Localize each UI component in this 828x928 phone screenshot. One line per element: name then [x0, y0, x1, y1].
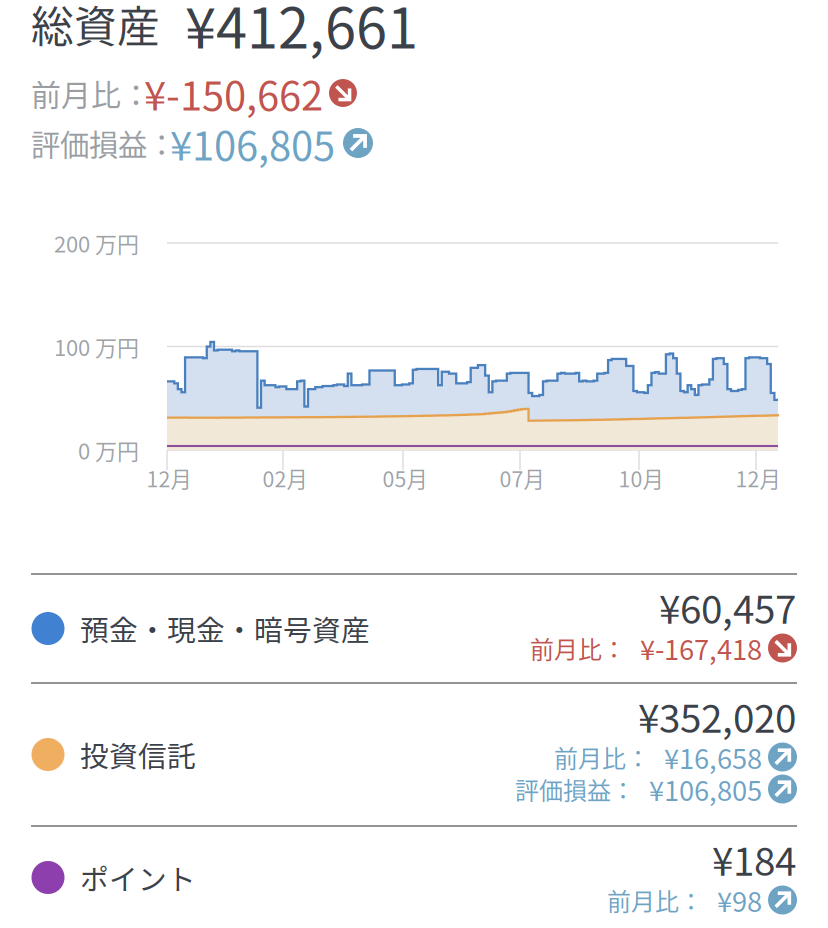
staticText: ¥106,805	[170, 114, 335, 172]
staticText: ¥106,805	[649, 769, 762, 809]
staticText: 総資産	[31, 0, 160, 55]
staticText: 0 万円	[78, 434, 139, 466]
staticText: 100 万円	[54, 331, 139, 362]
staticText: ¥-150,662	[144, 64, 323, 122]
staticText: ¥352,020	[638, 688, 796, 744]
staticText: 前月比：	[31, 71, 151, 115]
staticText: 10月	[618, 463, 663, 493]
staticText: 前月比：	[530, 631, 626, 665]
staticText: 預金・現金・暗号資産	[80, 608, 370, 649]
staticText: ¥60,457	[659, 579, 796, 635]
staticText: 200 万円	[54, 227, 139, 259]
staticText: 前月比：	[607, 883, 703, 917]
staticText: 評価損益：	[31, 122, 176, 164]
staticText: 前月比：	[554, 740, 650, 774]
staticText: 12月	[146, 463, 191, 493]
staticText: ¥16,658	[664, 737, 762, 777]
staticText: ¥-167,418	[640, 628, 762, 668]
staticText: ポイント	[80, 857, 196, 898]
staticText: 評価損益：	[515, 772, 635, 806]
button[interactable]: 預金・現金・暗号資産	[0, 575, 828, 682]
staticText: 05月	[382, 463, 427, 493]
button[interactable]: ポイント	[0, 827, 828, 928]
staticText: 投資信託	[80, 734, 196, 775]
staticText: ¥412,661	[185, 0, 418, 65]
staticText: ¥98	[717, 880, 762, 920]
staticText: 12月	[735, 463, 780, 493]
staticText: 07月	[499, 463, 544, 493]
button[interactable]: 投資信託	[0, 684, 828, 825]
staticText: 02月	[262, 463, 307, 493]
staticText: ¥184	[712, 831, 796, 887]
